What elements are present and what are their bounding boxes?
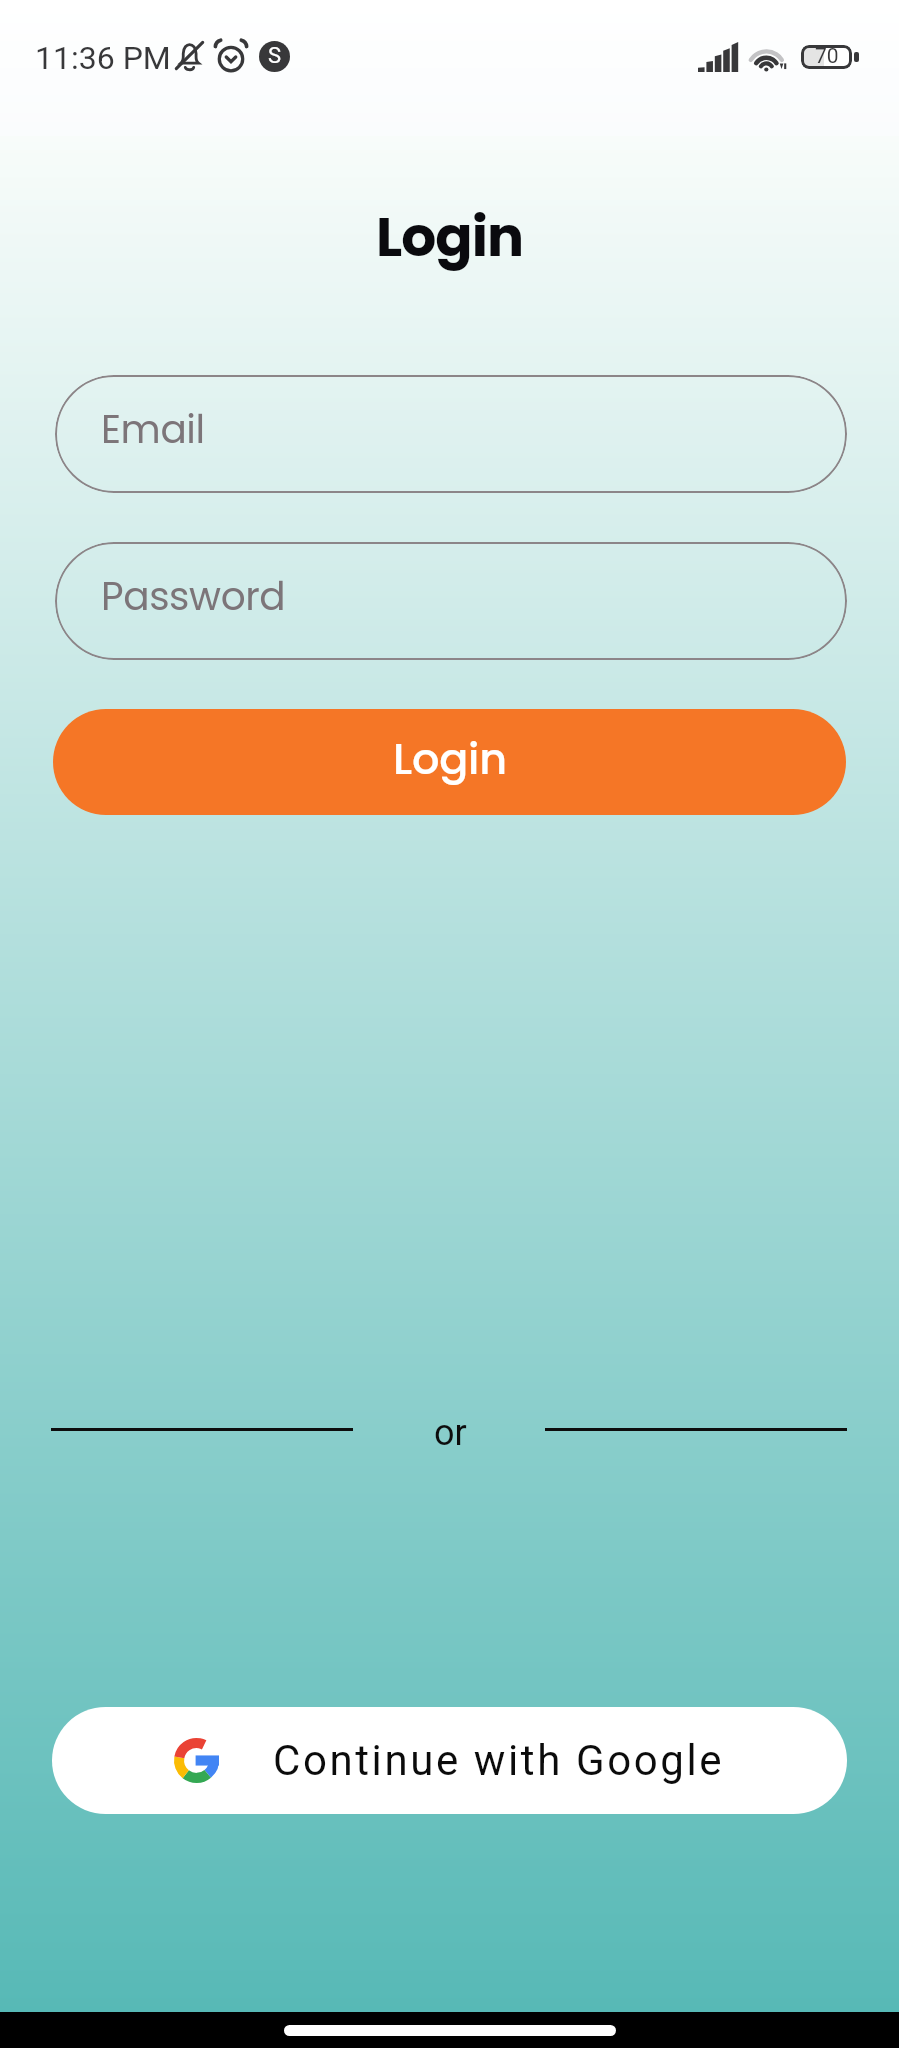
staticText: Login [0,198,899,275]
staticText: 11:36 PM [35,39,171,77]
button[interactable]: Home gesture bar [284,2025,616,2036]
staticText: or [434,1412,467,1454]
staticText: 70 [815,45,839,68]
button[interactable]: Email [55,375,847,493]
staticText: Continue with Google [273,1736,725,1785]
button[interactable]: Password [55,542,847,660]
staticText: Login [393,729,507,789]
other: Google logo [174,1738,219,1783]
staticText: Password [101,569,286,624]
other: Wi-Fi [747,42,789,72]
other: Alarm set [214,40,248,74]
button[interactable]: Google logo [52,1707,847,1814]
staticText: S [268,43,282,69]
button[interactable]: Login [53,709,846,815]
other: Cellular signal [698,42,739,72]
staticText: Email [101,402,205,457]
other: Screenshot app [259,41,290,72]
other: Notifications silenced [173,40,206,73]
